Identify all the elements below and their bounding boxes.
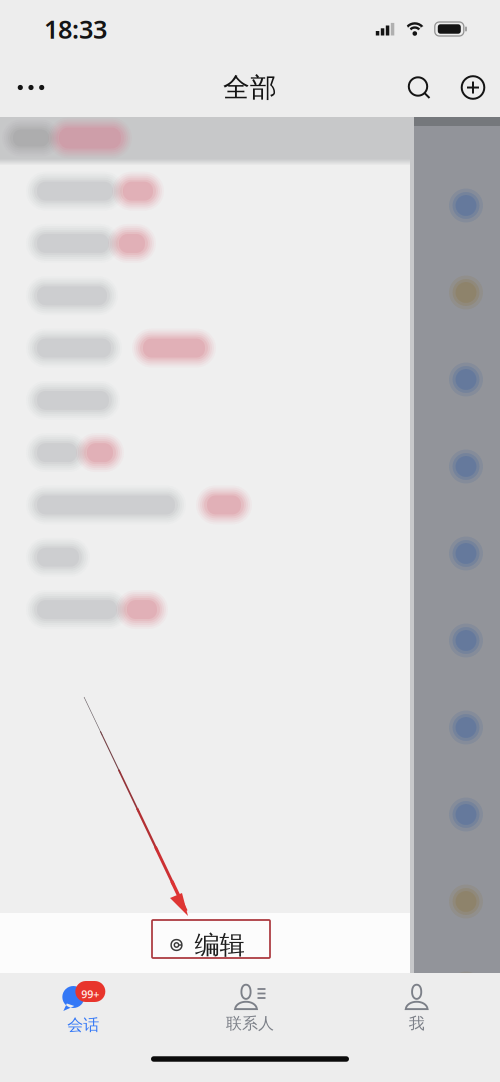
button[interactable]: More bbox=[0, 61, 62, 113]
button[interactable]: 99+ bbox=[0, 980, 167, 1035]
button[interactable]: Search bbox=[392, 61, 446, 113]
button[interactable]: 编辑 bbox=[147, 926, 265, 964]
staticText: 18:33 bbox=[44, 12, 107, 46]
button[interactable]: Add bbox=[446, 61, 500, 113]
staticText: 我 bbox=[409, 1013, 425, 1033]
staticText: 99+ bbox=[81, 987, 99, 1001]
staticText: 编辑 bbox=[194, 929, 244, 960]
button[interactable]: 我 bbox=[333, 981, 500, 1033]
staticText: 全部 bbox=[223, 71, 277, 104]
staticText: 会话 bbox=[67, 1015, 99, 1035]
button[interactable]: 联系人 bbox=[167, 981, 333, 1033]
staticText: 联系人 bbox=[226, 1013, 274, 1033]
